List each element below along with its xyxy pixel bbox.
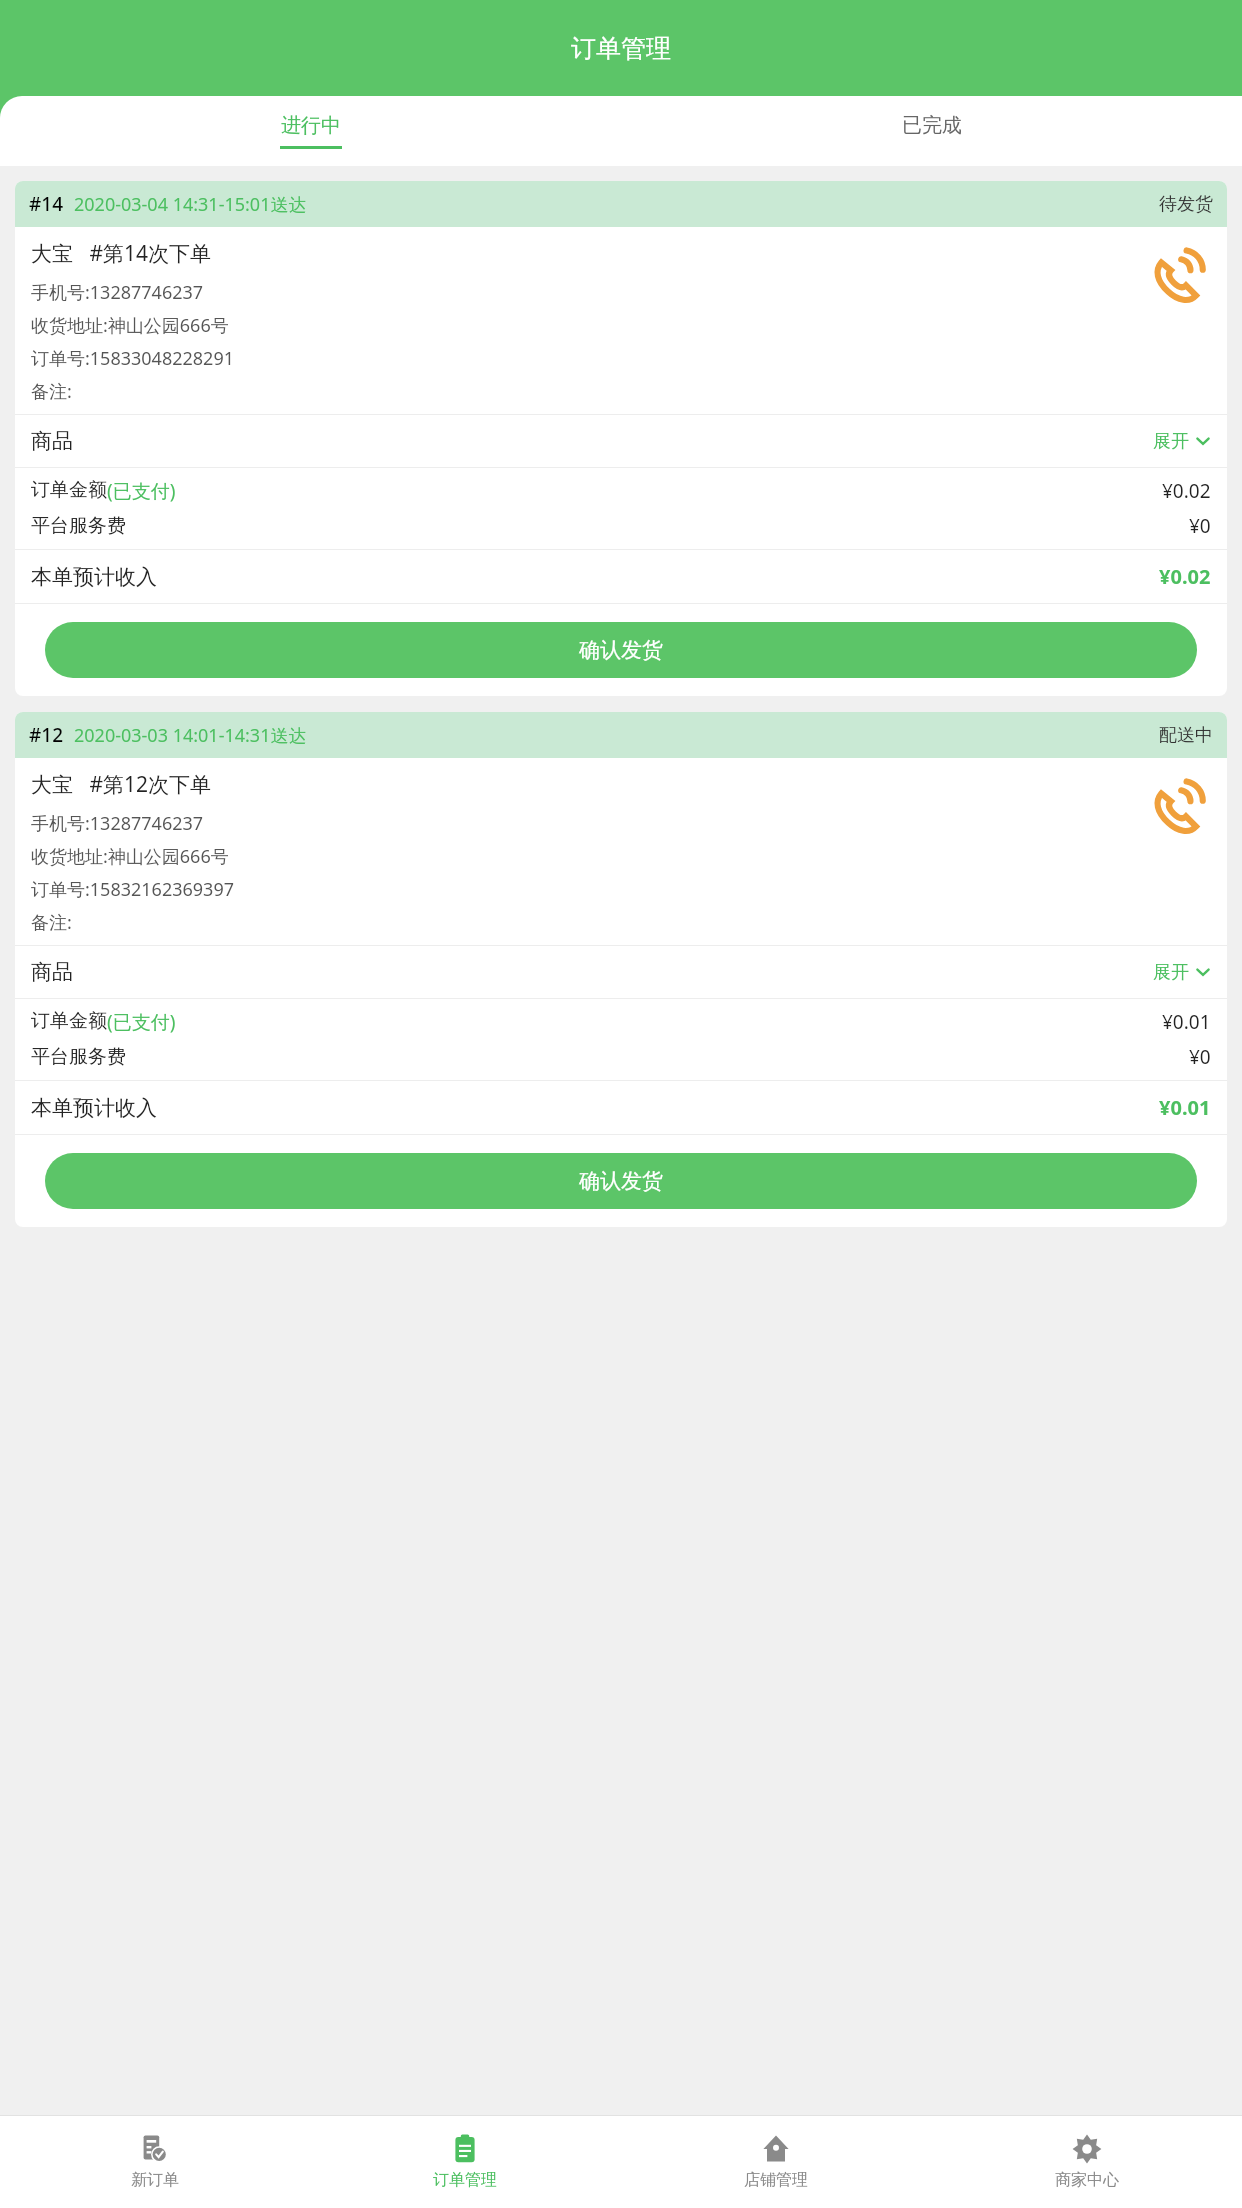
button[interactable]: 拨打电话	[1149, 780, 1205, 836]
staticText: 进行中	[281, 113, 341, 138]
button[interactable]: 新订单	[0, 2116, 310, 2208]
staticText: 平台服务费	[31, 1045, 126, 1069]
staticText: #12	[29, 722, 64, 748]
staticText: 展开	[1153, 961, 1189, 984]
staticText: 大宝 #第14次下单	[31, 239, 211, 268]
staticText: ¥0.01	[1159, 1094, 1211, 1121]
staticText: 待发货	[1159, 193, 1213, 216]
button[interactable]: 已完成	[621, 96, 1242, 166]
button[interactable]: 订单管理	[310, 2116, 620, 2208]
button[interactable]: 店铺管理	[620, 2116, 931, 2208]
staticText: 商家中心	[1055, 2170, 1119, 2190]
staticText: ¥0.01	[1162, 1009, 1211, 1035]
staticText: 展开	[1153, 430, 1189, 453]
staticText: 订单金额	[31, 478, 107, 502]
button[interactable]: 确认发货	[45, 622, 1197, 678]
staticText: 订单管理	[433, 2170, 497, 2190]
button[interactable]: #14	[15, 181, 1227, 696]
staticText: 订单号:15832162369397	[31, 877, 234, 902]
staticText: 订单金额	[31, 1009, 107, 1033]
staticText: 配送中	[1159, 724, 1213, 747]
staticText: (已支付)	[107, 478, 176, 504]
staticText: 大宝 #第12次下单	[31, 770, 211, 799]
staticText: 2020-03-04 14:31-15:01送达	[74, 192, 307, 217]
button[interactable]: 进行中	[0, 96, 621, 166]
staticText: 备注:	[31, 379, 72, 404]
staticText: #14	[29, 191, 64, 217]
button[interactable]: 商家中心	[931, 2116, 1242, 2208]
staticText: ¥0.02	[1162, 478, 1211, 504]
staticText: 确认发货	[579, 1168, 663, 1194]
staticText: 备注:	[31, 910, 72, 935]
button[interactable]: #12	[15, 712, 1227, 1227]
staticText: 本单预计收入	[31, 564, 157, 590]
staticText: ¥0.02	[1159, 563, 1211, 590]
staticText: 手机号:13287746237	[31, 811, 204, 836]
staticText: 已完成	[902, 113, 962, 138]
staticText: ¥0	[1189, 513, 1211, 539]
staticText: 收货地址:神山公园666号	[31, 844, 229, 869]
staticText: 确认发货	[579, 637, 663, 663]
staticText: 平台服务费	[31, 514, 126, 538]
staticText: (已支付)	[107, 1009, 176, 1035]
staticText: ¥0	[1189, 1044, 1211, 1070]
button[interactable]: 商品	[15, 946, 1227, 998]
staticText: 新订单	[131, 2170, 179, 2190]
staticText: 店铺管理	[744, 2170, 808, 2190]
button[interactable]: 确认发货	[45, 1153, 1197, 1209]
staticText: 2020-03-03 14:01-14:31送达	[74, 723, 307, 748]
staticText: 收货地址:神山公园666号	[31, 313, 229, 338]
staticText: 订单号:15833048228291	[31, 346, 234, 371]
staticText: 商品	[31, 959, 73, 985]
staticText: 本单预计收入	[31, 1095, 157, 1121]
staticText: 手机号:13287746237	[31, 280, 204, 305]
button[interactable]: 拨打电话	[1149, 249, 1205, 305]
button[interactable]: 商品	[15, 415, 1227, 467]
staticText: 订单管理	[571, 33, 671, 64]
staticText: 商品	[31, 428, 73, 454]
